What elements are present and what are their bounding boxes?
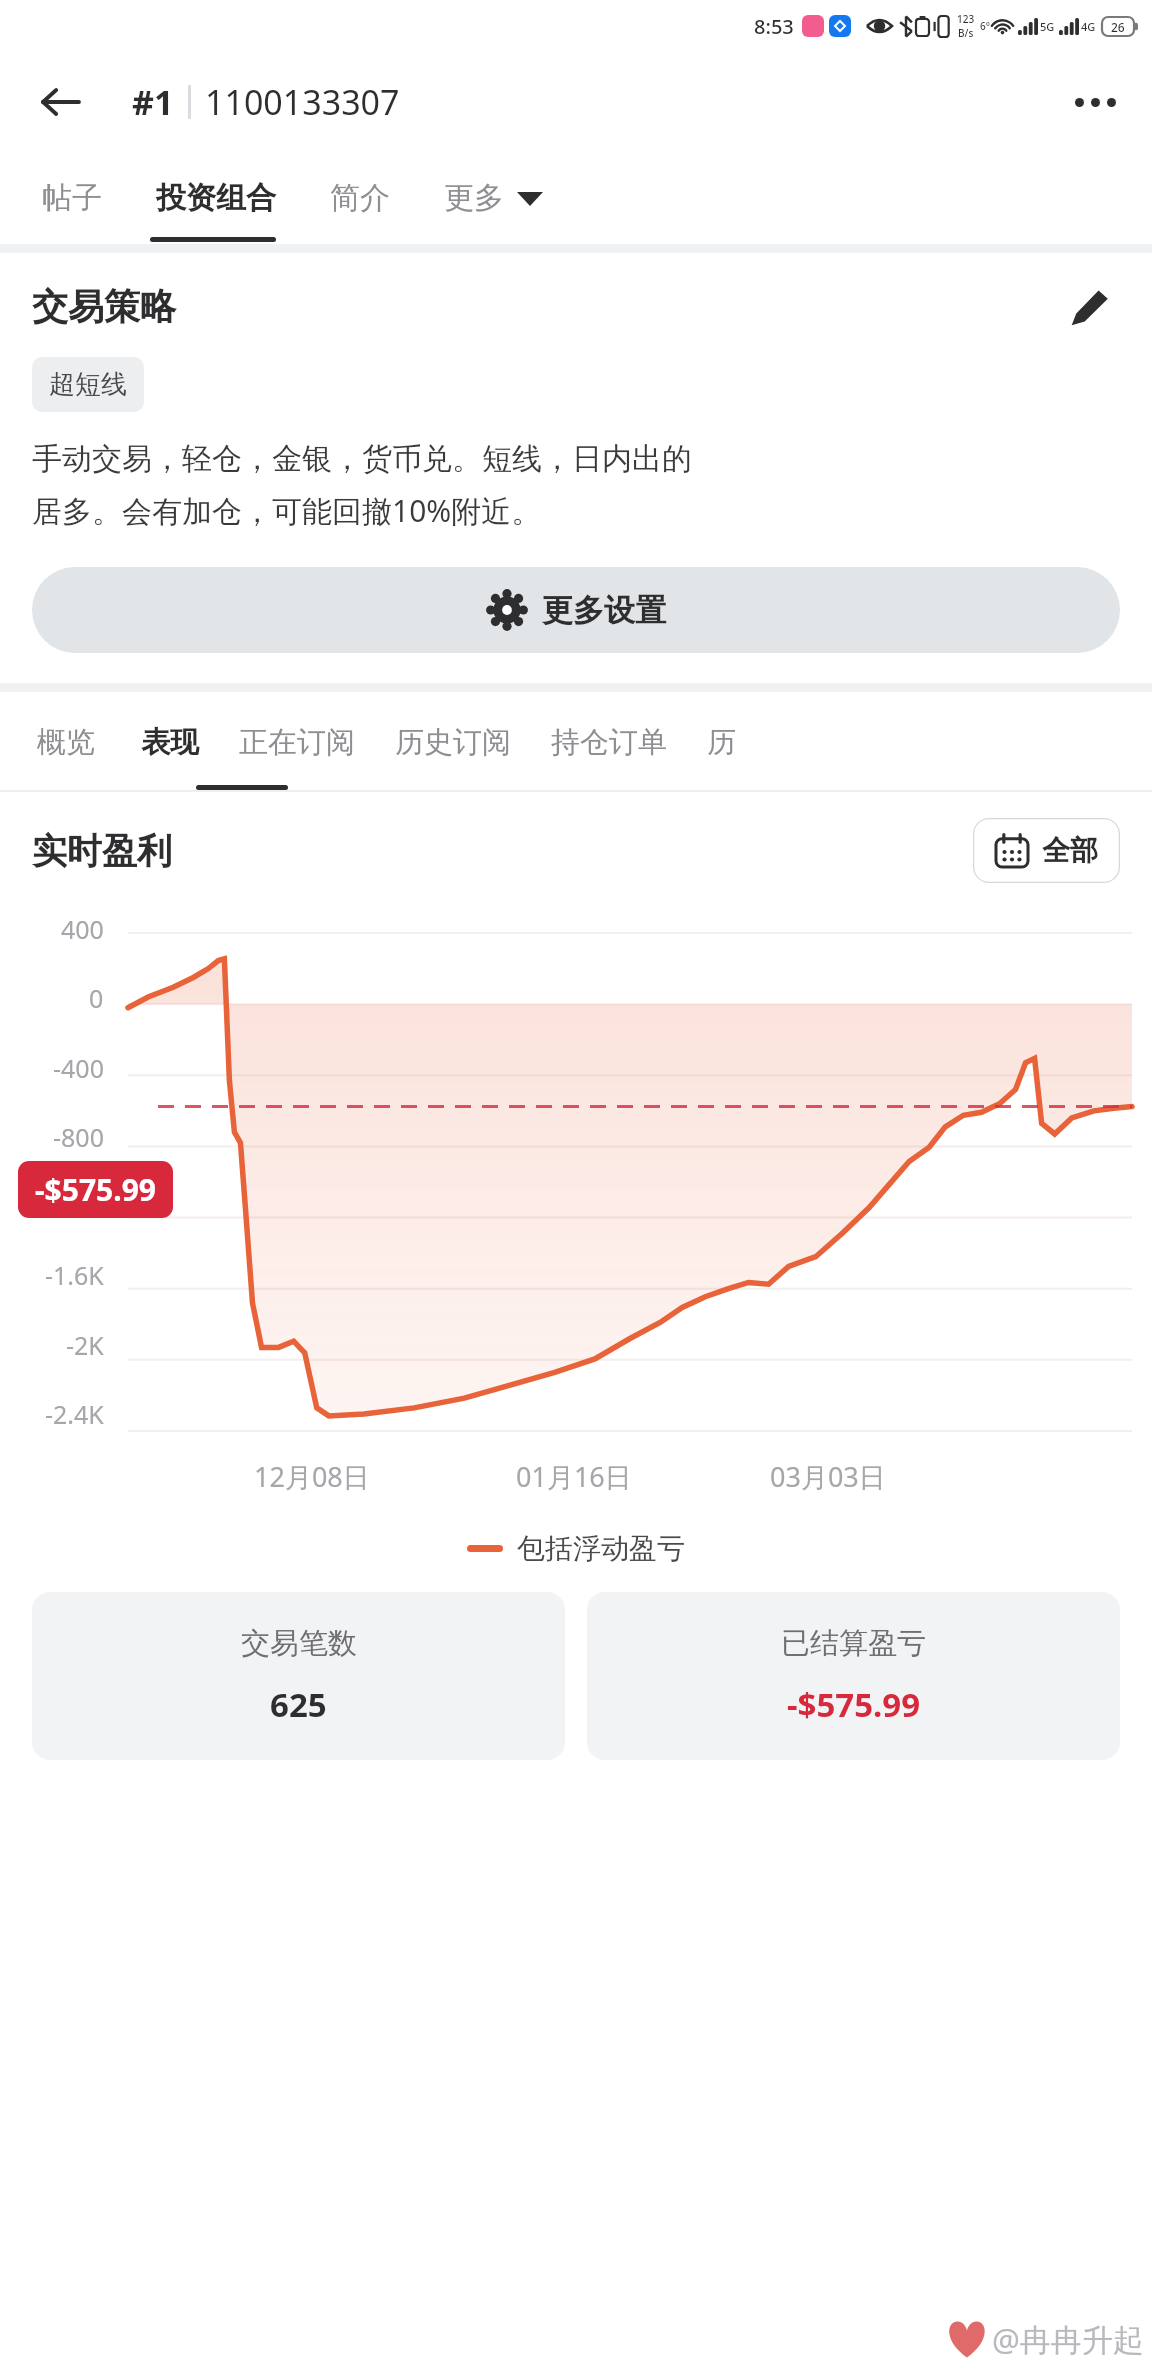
staticText: 简介	[330, 179, 390, 217]
staticText: 1100133307	[205, 79, 400, 125]
staticText: 已结算盈亏	[781, 1625, 926, 1662]
staticText: -800	[53, 1120, 104, 1154]
button[interactable]: 正在订阅	[234, 712, 360, 773]
staticText: 8:53	[754, 13, 794, 40]
staticText: 手动交易，轻仓，金银，货币兑。短线，日内出的	[32, 440, 692, 478]
button[interactable]: 更多设置	[32, 567, 1120, 653]
button[interactable]: 交易笔数	[32, 1592, 565, 1760]
staticText: 历	[707, 724, 736, 761]
staticText: 交易策略	[32, 284, 176, 329]
staticText: 12月08日	[254, 1458, 370, 1495]
button[interactable]: More options	[1066, 73, 1124, 131]
button[interactable]: Edit strategy	[1062, 277, 1120, 335]
button[interactable]: 超短线	[32, 357, 144, 412]
staticText: 实时盈利	[32, 829, 172, 873]
button[interactable]: 已结算盈亏	[587, 1592, 1120, 1760]
button[interactable]: 更多	[438, 167, 549, 229]
button[interactable]: 表现	[136, 712, 204, 773]
staticText: 帖子	[42, 179, 102, 217]
button[interactable]: 持仓订单	[546, 712, 672, 773]
staticText: 交易笔数	[241, 1625, 357, 1662]
staticText: 投资组合	[156, 179, 276, 217]
staticText: 全部	[1042, 833, 1098, 868]
staticText: 625	[270, 1682, 327, 1727]
staticText: 持仓订单	[551, 724, 667, 761]
staticText: -1.6K	[45, 1258, 104, 1292]
staticText: 123	[957, 12, 975, 26]
staticText: 更多设置	[542, 591, 666, 630]
staticText: 400	[61, 912, 104, 946]
staticText: 正在订阅	[239, 724, 355, 761]
button[interactable]: 全部	[973, 818, 1120, 883]
staticText: 01月16日	[516, 1458, 632, 1495]
staticText: -2.4K	[45, 1397, 104, 1431]
staticText: 5G	[1040, 19, 1055, 34]
staticText: 更多	[444, 179, 504, 217]
staticText: 03月03日	[770, 1458, 886, 1495]
staticText: 表现	[141, 724, 199, 761]
staticText: 6°	[980, 19, 990, 33]
button[interactable]: 历	[702, 712, 741, 773]
staticText: 概览	[37, 724, 95, 761]
staticText: -1.2K	[45, 1189, 104, 1223]
staticText: 历史订阅	[395, 724, 511, 761]
staticText: B/s	[958, 26, 974, 40]
button[interactable]: Back	[32, 73, 90, 131]
staticText: @冉冉升起	[992, 2318, 1144, 2360]
button[interactable]: 投资组合	[150, 167, 282, 229]
staticText: -400	[53, 1051, 104, 1085]
staticText: 居多。会有加仓，可能回撤10%附近。	[32, 490, 542, 531]
staticText: 包括浮动盈亏	[517, 1531, 685, 1566]
staticText: 超短线	[49, 368, 127, 401]
button[interactable]: 概览	[32, 712, 100, 773]
button[interactable]: 帖子	[36, 167, 108, 229]
staticText: #1	[132, 79, 174, 125]
staticText: -$575.99	[35, 1169, 156, 1210]
staticText: 26	[1111, 19, 1125, 35]
button[interactable]: 简介	[324, 167, 396, 229]
button[interactable]: 历史订阅	[390, 712, 516, 773]
staticText: 4G	[1081, 19, 1096, 34]
staticText: 0	[89, 981, 104, 1015]
staticText: -2K	[66, 1328, 104, 1362]
staticText: -$575.99	[787, 1682, 921, 1727]
